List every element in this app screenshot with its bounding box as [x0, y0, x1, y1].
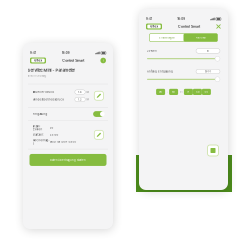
staticText: Einstellungen	[159, 36, 174, 39]
staticText: 1.2	[78, 98, 82, 101]
staticText: Aktionen	[195, 36, 205, 39]
staticText: Entgasung	[32, 112, 47, 116]
staticText: 23:00	[49, 133, 58, 136]
button[interactable]: Speichern	[207, 145, 218, 156]
staticText: Startzeit	[32, 133, 43, 136]
staticText: Datenübertragung starten	[50, 158, 86, 161]
staticText: reflex	[33, 59, 42, 62]
staticText: Zyklen	[147, 49, 157, 52]
staticText: Control Smart	[178, 24, 200, 29]
staticText: 23:00	[204, 70, 211, 73]
staticText: So	[204, 90, 208, 93]
button[interactable]: Schließen	[216, 24, 221, 29]
staticText: 9:41	[30, 51, 36, 55]
staticText: 20	[49, 126, 53, 129]
staticText: bar	[86, 91, 89, 93]
button[interactable]: Einstellungen	[149, 34, 217, 42]
button[interactable]: Bearbeiten	[94, 91, 103, 100]
button[interactable]: reflex	[146, 23, 162, 29]
staticText: aktueller Druck	[32, 90, 53, 94]
staticText: alles in Ordnung	[27, 74, 46, 77]
staticText: ›	[167, 90, 168, 93]
staticText: Fr	[187, 90, 189, 93]
button[interactable]: Entgasung ein- oder ausschalten	[93, 111, 103, 117]
staticText: 20	[206, 49, 209, 52]
staticText: bar	[86, 98, 89, 101]
staticText: Mo Di Mi Do Fr Sa So	[49, 140, 75, 143]
staticText: i	[103, 59, 104, 62]
button[interactable]: Datenübertragung starten	[23, 149, 113, 166]
button[interactable]: Fr	[184, 89, 193, 95]
button[interactable]: So	[202, 89, 211, 95]
button[interactable]: Mo	[156, 89, 165, 95]
staticText: Anfang Entgasung	[147, 70, 173, 73]
staticText: 1.6	[78, 90, 82, 94]
staticText: Mo	[159, 90, 163, 93]
staticText: 16:09	[177, 17, 185, 21]
button[interactable]: Bearbeiten	[94, 130, 103, 139]
button[interactable]: Sa	[193, 89, 202, 95]
staticText: Servitec Mini - Parameter	[27, 68, 75, 73]
staticText: bis	[179, 91, 182, 93]
staticText: 16:09	[62, 51, 70, 55]
staticText: Sa	[196, 90, 199, 93]
button[interactable]: reflex	[30, 57, 46, 63]
button[interactable]: Info	[100, 58, 106, 63]
staticText: Mi	[172, 90, 175, 93]
staticText: 9:41	[146, 17, 152, 21]
staticText: Control Smart	[62, 58, 84, 63]
staticText: anzahl Zyklen	[32, 125, 42, 131]
button[interactable]: Mi	[169, 89, 178, 95]
staticText: Mindestbetriebsdruck	[32, 98, 63, 101]
staticText: Wochentage	[32, 139, 49, 145]
staticText: reflex	[149, 25, 158, 28]
